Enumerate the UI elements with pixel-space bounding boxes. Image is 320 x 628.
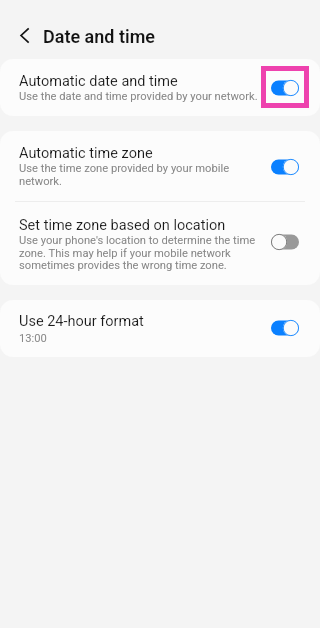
staticText: Use the time zone provided by your mobil… [19,162,263,188]
button[interactable]: Switch off [263,225,307,259]
staticText: 13:00 [19,332,47,345]
staticText: Automatic time zone [19,145,153,162]
button[interactable]: Back [9,20,39,50]
button[interactable]: Use 24-hour format [0,300,320,357]
button[interactable]: Set time zone based on location [0,202,320,285]
staticText: Use your phone's location to determine t… [19,234,263,272]
button[interactable]: Automatic time zone [0,131,320,201]
button[interactable]: Automatic date and time [0,59,320,116]
staticText: Set time zone based on location [19,217,226,234]
staticText: Use the date and time provided by your n… [19,90,258,103]
staticText: Automatic date and time [19,73,178,90]
staticText: Use 24-hour format [19,313,144,330]
button[interactable]: Switch on [263,311,307,345]
button[interactable]: Switch on [263,71,307,105]
staticText: Date and time [43,26,155,47]
button[interactable]: Switch on [263,150,307,184]
